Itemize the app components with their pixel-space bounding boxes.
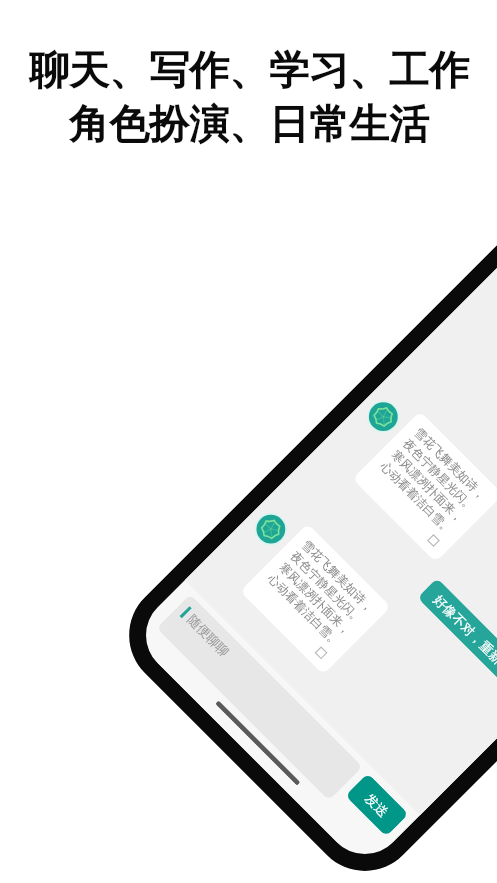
staticText: 雪花飞舞美如诗， 夜色宁静星光闪。 寒风凛冽扑面来， 心动看着洁白雪。 (264, 537, 378, 650)
button[interactable]: 好像不对，重新写 (417, 578, 497, 690)
button[interactable]: 发送 (345, 773, 409, 837)
staticText: 发送 (362, 790, 392, 820)
staticText: 随便聊聊 (185, 611, 233, 659)
staticText: 角色扮演、日常生活 (69, 99, 429, 149)
staticText: 好像不对，重新写 (431, 591, 497, 676)
staticText: 聊天、写作、学习、工作 (29, 45, 469, 95)
staticText: 雪花飞舞美如诗， 夜色宁静星光闪。 寒风凛冽扑面来， 心动看着洁白雪。 (377, 424, 490, 538)
other: Copy (313, 646, 329, 661)
button[interactable] (156, 594, 363, 801)
other: Copy (426, 533, 441, 549)
